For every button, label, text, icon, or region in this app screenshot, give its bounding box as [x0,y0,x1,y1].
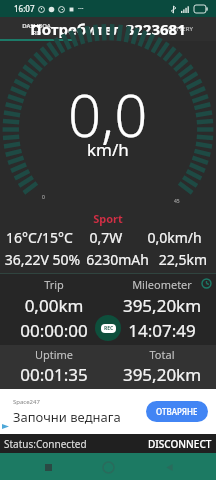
staticText: REC [104,325,114,332]
staticText: 6230mAh [82,250,153,269]
staticText: Uptime [0,347,108,362]
button[interactable]: DISCONNECT [148,437,212,451]
staticText: 16°C/15°C [3,228,76,247]
button[interactable]: DASHBOA RD [0,17,72,41]
staticText: Space247 [13,398,40,406]
staticText: km/h [87,138,129,161]
staticText: Trip [0,277,108,292]
staticText: 0,0km/h [136,228,213,247]
staticText: 22,5km [153,250,213,269]
button[interactable]: ОТВАРЯНЕ [146,401,208,422]
staticText: 36,22V 50% [3,250,82,269]
staticText: 14:07:49 [108,319,216,342]
staticText: 16:07 [14,3,35,14]
staticText: 0,7W [76,228,136,247]
staticText: Потребител 3223681 [0,19,216,39]
staticText: Status:Connected [4,437,87,451]
staticText: BATTERY [168,25,193,33]
staticText: 00:00:00 [0,319,108,342]
staticText: 0 [42,194,45,201]
staticText: DISCONNECT [148,437,212,451]
button[interactable]: History [199,276,213,290]
button[interactable]: ABS [72,17,144,41]
staticText: 395,20km [108,294,216,317]
button[interactable]: Recents [35,454,61,480]
staticText: 0,00km [0,294,108,317]
staticText: DASHBOA RD [22,22,51,37]
staticText: 0,0 [68,75,148,154]
button[interactable]: Record [95,315,121,341]
staticText: 45 [174,198,180,205]
staticText: 395,20km [108,363,216,386]
button[interactable]: BATTERY [144,17,216,41]
staticText: ··· [78,4,84,14]
staticText: Mileometer [108,277,216,292]
staticText: ABS [102,25,114,33]
staticText: Започни веднага [13,408,121,426]
staticText: 00:01:35 [0,363,108,386]
staticText: Total [108,347,216,362]
button[interactable]: Home [95,454,121,480]
staticText: ОТВАРЯНЕ [156,406,198,417]
button[interactable]: Space247 [0,389,216,434]
staticText: Sport [0,211,216,226]
